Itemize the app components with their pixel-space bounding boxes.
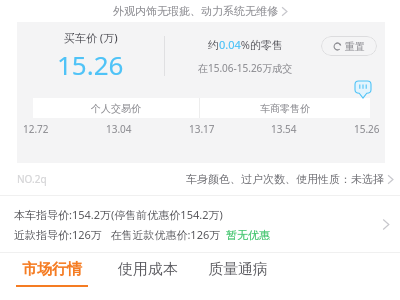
staticText: 15.26: [354, 122, 380, 136]
staticText: 重置: [345, 40, 365, 53]
staticText: 外观内饰无瑕疵、动力系统无维修: [113, 4, 278, 18]
other: 价格标记: [355, 81, 371, 98]
staticText: 个人交易价: [91, 102, 141, 115]
staticText: 15.26: [57, 47, 124, 82]
staticText: 13.54: [271, 122, 297, 136]
staticText: 在15.06-15.26万成交: [198, 61, 293, 75]
button[interactable]: NO.2q: [0, 163, 400, 195]
staticText: 质量通病: [208, 260, 268, 279]
staticText: 车身颜色、过户次数、使用性质：未选择: [186, 172, 384, 186]
button[interactable]: 外观内饰无瑕疵、动力系统无维修: [0, 0, 400, 22]
staticText: 车商零售价: [260, 102, 310, 115]
staticText: 12.72: [23, 122, 49, 136]
button[interactable]: 市场行情: [14, 260, 90, 287]
staticText: 约0.04%的零售: [208, 37, 283, 52]
staticText: 买车价 (万): [64, 30, 118, 45]
button[interactable]: 重置: [321, 36, 377, 56]
staticText: 13.17: [189, 122, 215, 136]
button[interactable]: 使用成本: [116, 260, 180, 287]
staticText: 使用成本: [118, 260, 178, 279]
staticText: 本车指导价:154.2万(停售前优惠价154.2万): [14, 207, 223, 222]
staticText: 市场行情: [22, 260, 82, 279]
button[interactable]: 质量通病: [206, 260, 270, 287]
staticText: NO.2q: [17, 172, 47, 186]
staticText: 13.04: [106, 122, 132, 136]
staticText: 暂无优惠: [226, 228, 270, 242]
button[interactable]: 本车指导价:154.2万(停售前优惠价154.2万): [0, 196, 400, 252]
staticText: 近款指导价:126万 在售近款优惠价:126万: [14, 227, 221, 242]
